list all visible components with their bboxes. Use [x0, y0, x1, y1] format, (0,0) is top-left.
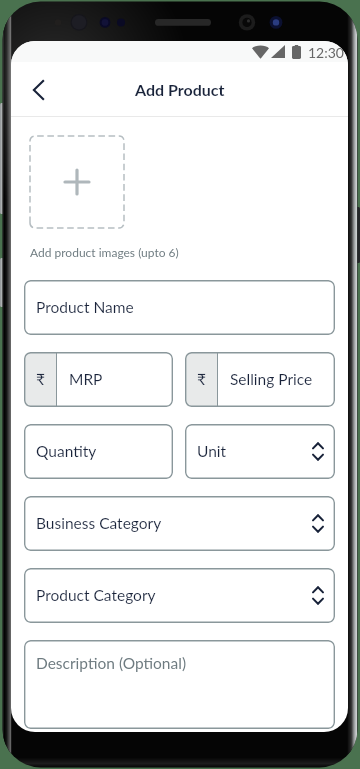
- staticText: Product Category: [36, 586, 156, 605]
- staticText: Add Product: [135, 80, 225, 99]
- staticText: ₹: [197, 370, 206, 389]
- staticText: ₹: [36, 370, 45, 389]
- staticText: Unit: [197, 442, 227, 461]
- button[interactable]: Product Category: [24, 568, 335, 623]
- button[interactable]: Back: [20, 72, 56, 108]
- button[interactable]: Quantity: [24, 424, 173, 479]
- button[interactable]: ₹: [185, 352, 335, 407]
- button[interactable]: ₹: [24, 352, 173, 407]
- staticText: Business Category: [36, 514, 162, 533]
- button[interactable]: Unit: [185, 424, 335, 479]
- staticText: MRP: [69, 370, 103, 389]
- button[interactable]: Description (Optional): [24, 640, 335, 729]
- staticText: Quantity: [36, 442, 97, 461]
- button[interactable]: Add product image: [30, 136, 124, 228]
- staticText: Add product images (upto 6): [30, 245, 179, 259]
- button[interactable]: Product Name: [24, 280, 335, 335]
- staticText: 12:30: [308, 44, 344, 61]
- staticText: Description (Optional): [36, 654, 187, 673]
- staticText: Product Name: [36, 298, 134, 317]
- staticText: Selling Price: [230, 370, 313, 389]
- button[interactable]: Business Category: [24, 496, 335, 551]
